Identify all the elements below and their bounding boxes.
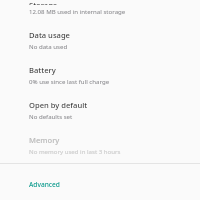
- staticText: Data usage: [29, 30, 70, 40]
- button: Memory: [0, 120, 200, 155]
- staticText: Advanced: [29, 180, 60, 189]
- staticText: Memory: [29, 135, 60, 145]
- staticText: 0% use since last full charge: [29, 77, 110, 85]
- staticText: No data used: [29, 42, 68, 50]
- staticText: Open by default: [29, 100, 88, 110]
- button[interactable]: Advanced: [0, 180, 200, 189]
- button[interactable]: Battery: [0, 50, 200, 85]
- staticText: No memory used in last 3 hours: [29, 147, 121, 155]
- button[interactable]: Open by default: [0, 85, 200, 120]
- staticText: 12.08 MB used in internal storage: [29, 7, 126, 15]
- staticText: No defaults set: [29, 112, 73, 120]
- staticText: Storage: [29, 0, 58, 5]
- button[interactable]: Data usage: [0, 20, 200, 50]
- staticText: Battery: [29, 65, 56, 75]
- button[interactable]: Storage: [0, 0, 200, 15]
